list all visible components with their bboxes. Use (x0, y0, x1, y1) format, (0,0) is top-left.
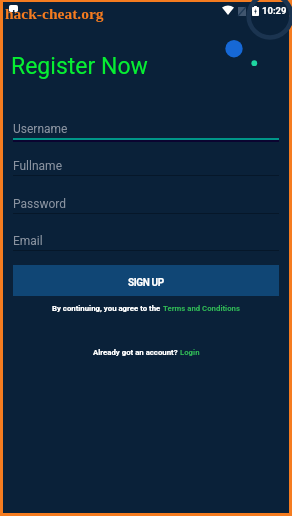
staticText: Already got an account? (93, 348, 180, 357)
button[interactable]: Fullname (13, 156, 279, 176)
button[interactable]: SIGN UP (13, 265, 279, 296)
other: Battery (252, 6, 259, 16)
staticText: SIGN UP (128, 277, 164, 289)
staticText: By continuing, you agree to the (52, 304, 163, 313)
staticText: Register Now (11, 53, 148, 80)
staticText: Email (13, 234, 43, 248)
staticText: 10:29 (262, 5, 287, 16)
staticText: Username (13, 122, 68, 136)
button[interactable]: Email (13, 231, 279, 251)
staticText: Fullname (13, 159, 62, 173)
staticText: Password (13, 197, 67, 211)
button[interactable]: Password (13, 194, 279, 214)
button[interactable]: Login (180, 348, 200, 357)
button[interactable]: Username (13, 119, 279, 142)
button[interactable]: Terms and Conditions (163, 304, 240, 313)
other: Wi-Fi (222, 5, 234, 15)
staticText: hack-cheat.org (5, 5, 104, 22)
other: Mobile signal (238, 7, 246, 16)
